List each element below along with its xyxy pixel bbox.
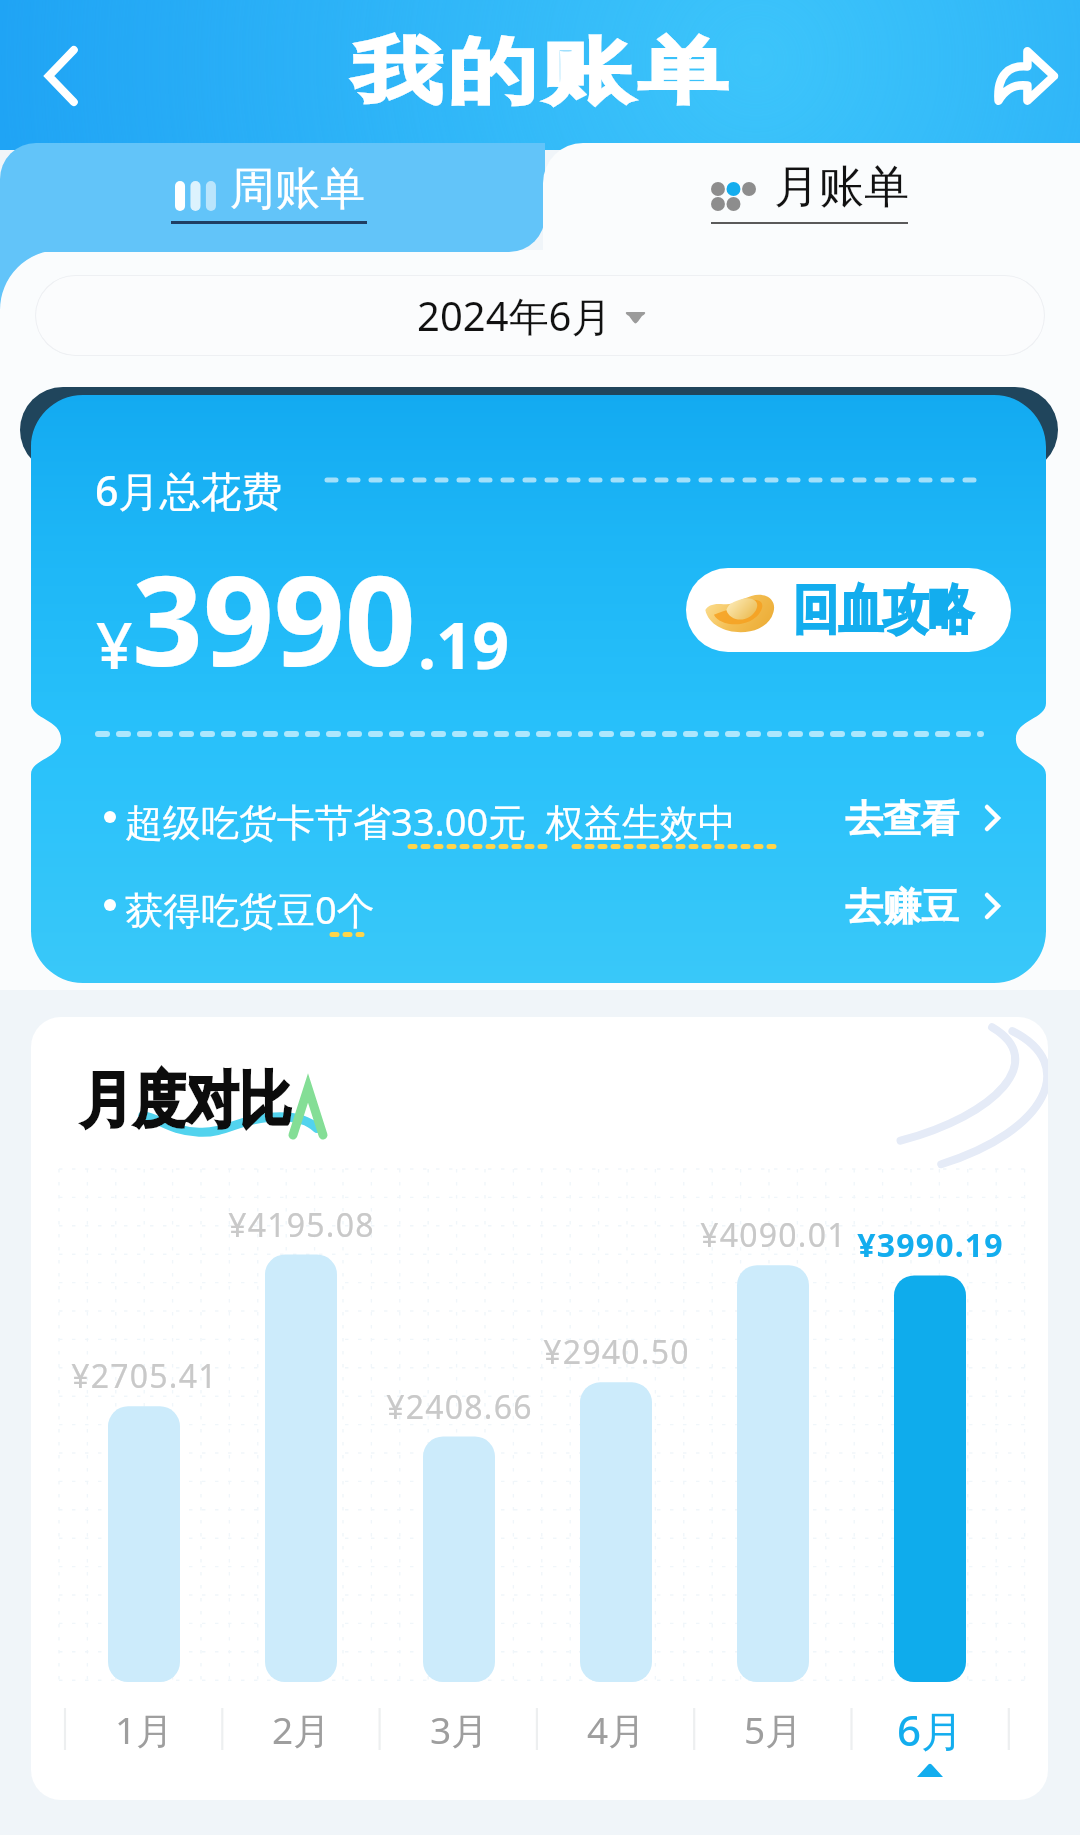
staticText: 去赚豆 (845, 883, 959, 931)
staticText: 3月 (430, 1704, 489, 1755)
staticText: 6月 (897, 1701, 964, 1758)
staticText: 超级吃货卡节省33.00元 权益生效中 (125, 795, 736, 847)
button[interactable]: 回血攻略 (686, 568, 1011, 652)
staticText: .19 (418, 601, 510, 688)
button[interactable]: 2024年6月 (35, 275, 1045, 356)
staticText: 周账单 (230, 161, 365, 218)
staticText: ¥4090.01 (700, 1213, 847, 1255)
staticText: 3990 (132, 533, 416, 702)
staticText: 2月 (272, 1704, 331, 1755)
staticText: 月度对比 (80, 1063, 291, 1139)
staticText: ¥3990.19 (857, 1223, 1004, 1265)
staticText: 去查看 (845, 795, 959, 843)
staticText: ¥4195.08 (228, 1203, 375, 1245)
staticText: ¥2940.50 (543, 1330, 690, 1372)
button[interactable]: Share (986, 38, 1062, 114)
staticText: 1月 (115, 1704, 174, 1755)
button[interactable]: 月账单 (578, 143, 1080, 253)
staticText: 4月 (587, 1704, 646, 1755)
staticText: 获得吃货豆0个 (125, 883, 375, 935)
staticText: ¥2705.41 (71, 1354, 218, 1396)
staticText: 2024年6月 (417, 288, 612, 343)
staticText: ¥ (96, 601, 133, 688)
staticText: 5月 (744, 1704, 803, 1755)
staticText: 我的账单 (350, 28, 730, 117)
staticText: 月账单 (774, 159, 909, 216)
staticText: ¥2408.66 (386, 1385, 533, 1427)
button[interactable]: 周账单 (0, 143, 545, 252)
button[interactable]: 获得吃货豆0个 (0, 875, 1080, 935)
button[interactable]: 超级吃货卡节省33.00元 权益生效中 (0, 787, 1080, 847)
staticText: 6月总花费 (95, 462, 283, 518)
staticText: 回血攻略 (793, 577, 973, 644)
button[interactable]: Back (20, 38, 96, 114)
